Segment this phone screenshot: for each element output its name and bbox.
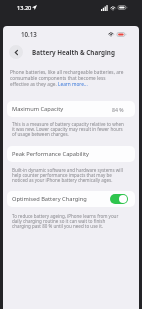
staticText: Battery Health & Charging	[32, 48, 115, 57]
staticText: 13.20	[17, 4, 32, 12]
staticText: This is a measure of battery capacity re…	[12, 121, 124, 137]
staticText: 10.13	[21, 30, 37, 38]
button[interactable]: Optimised Battery Charging	[7, 191, 135, 207]
staticText: Peak Performance Capability	[12, 150, 89, 158]
staticText: Built-in dynamic software and hardware s…	[12, 167, 124, 183]
button[interactable]: Back	[9, 45, 23, 59]
staticText: Phone batteries, like all rechargeable b…	[10, 69, 124, 87]
staticText: Optimised Battery Charging	[12, 195, 87, 203]
button[interactable]: Maximum Capacity	[7, 101, 135, 117]
staticText: Maximum Capacity	[12, 105, 64, 113]
staticText: 84 %	[112, 106, 124, 113]
staticText: To reduce battery ageing, iPhone learns …	[12, 213, 124, 229]
button[interactable]: Optimised Battery Charging	[110, 194, 128, 204]
button[interactable]: Peak Performance Capability	[7, 146, 135, 162]
